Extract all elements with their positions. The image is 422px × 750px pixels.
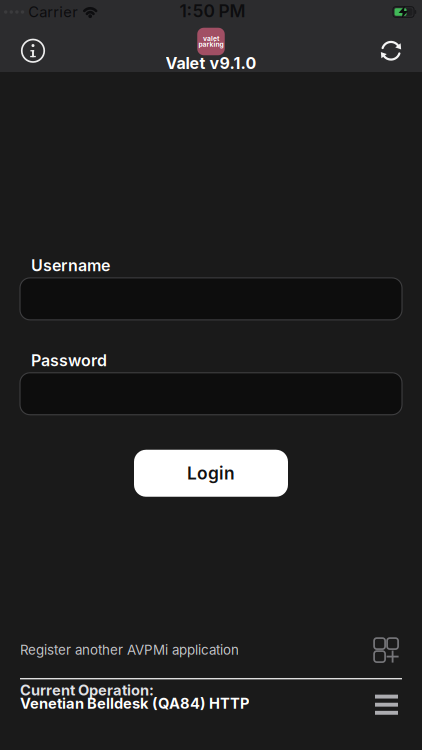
button[interactable]: Info xyxy=(0,39,45,63)
staticText: parking xyxy=(198,40,223,48)
staticText: valet xyxy=(203,35,219,42)
staticText: Current Operation: xyxy=(20,681,154,699)
staticText: Register another AVPMi application xyxy=(20,642,239,658)
button[interactable]: Refresh xyxy=(379,39,422,63)
staticText: Venetian Belldesk (QA84) HTTP xyxy=(20,695,250,712)
staticText: Carrier xyxy=(28,3,78,21)
staticText: Valet v9.1.0 xyxy=(165,54,256,73)
staticText: Username xyxy=(31,256,110,275)
button[interactable]: Register another AVPMi application xyxy=(0,638,422,662)
staticText: Password xyxy=(31,351,107,370)
button[interactable]: Menu xyxy=(375,687,398,707)
button[interactable]: Password text field xyxy=(0,373,422,415)
staticText: 1:50 PM xyxy=(179,1,245,21)
button[interactable]: Username text field xyxy=(0,278,422,320)
button[interactable]: Login xyxy=(134,450,288,497)
staticText: Login xyxy=(187,463,235,483)
